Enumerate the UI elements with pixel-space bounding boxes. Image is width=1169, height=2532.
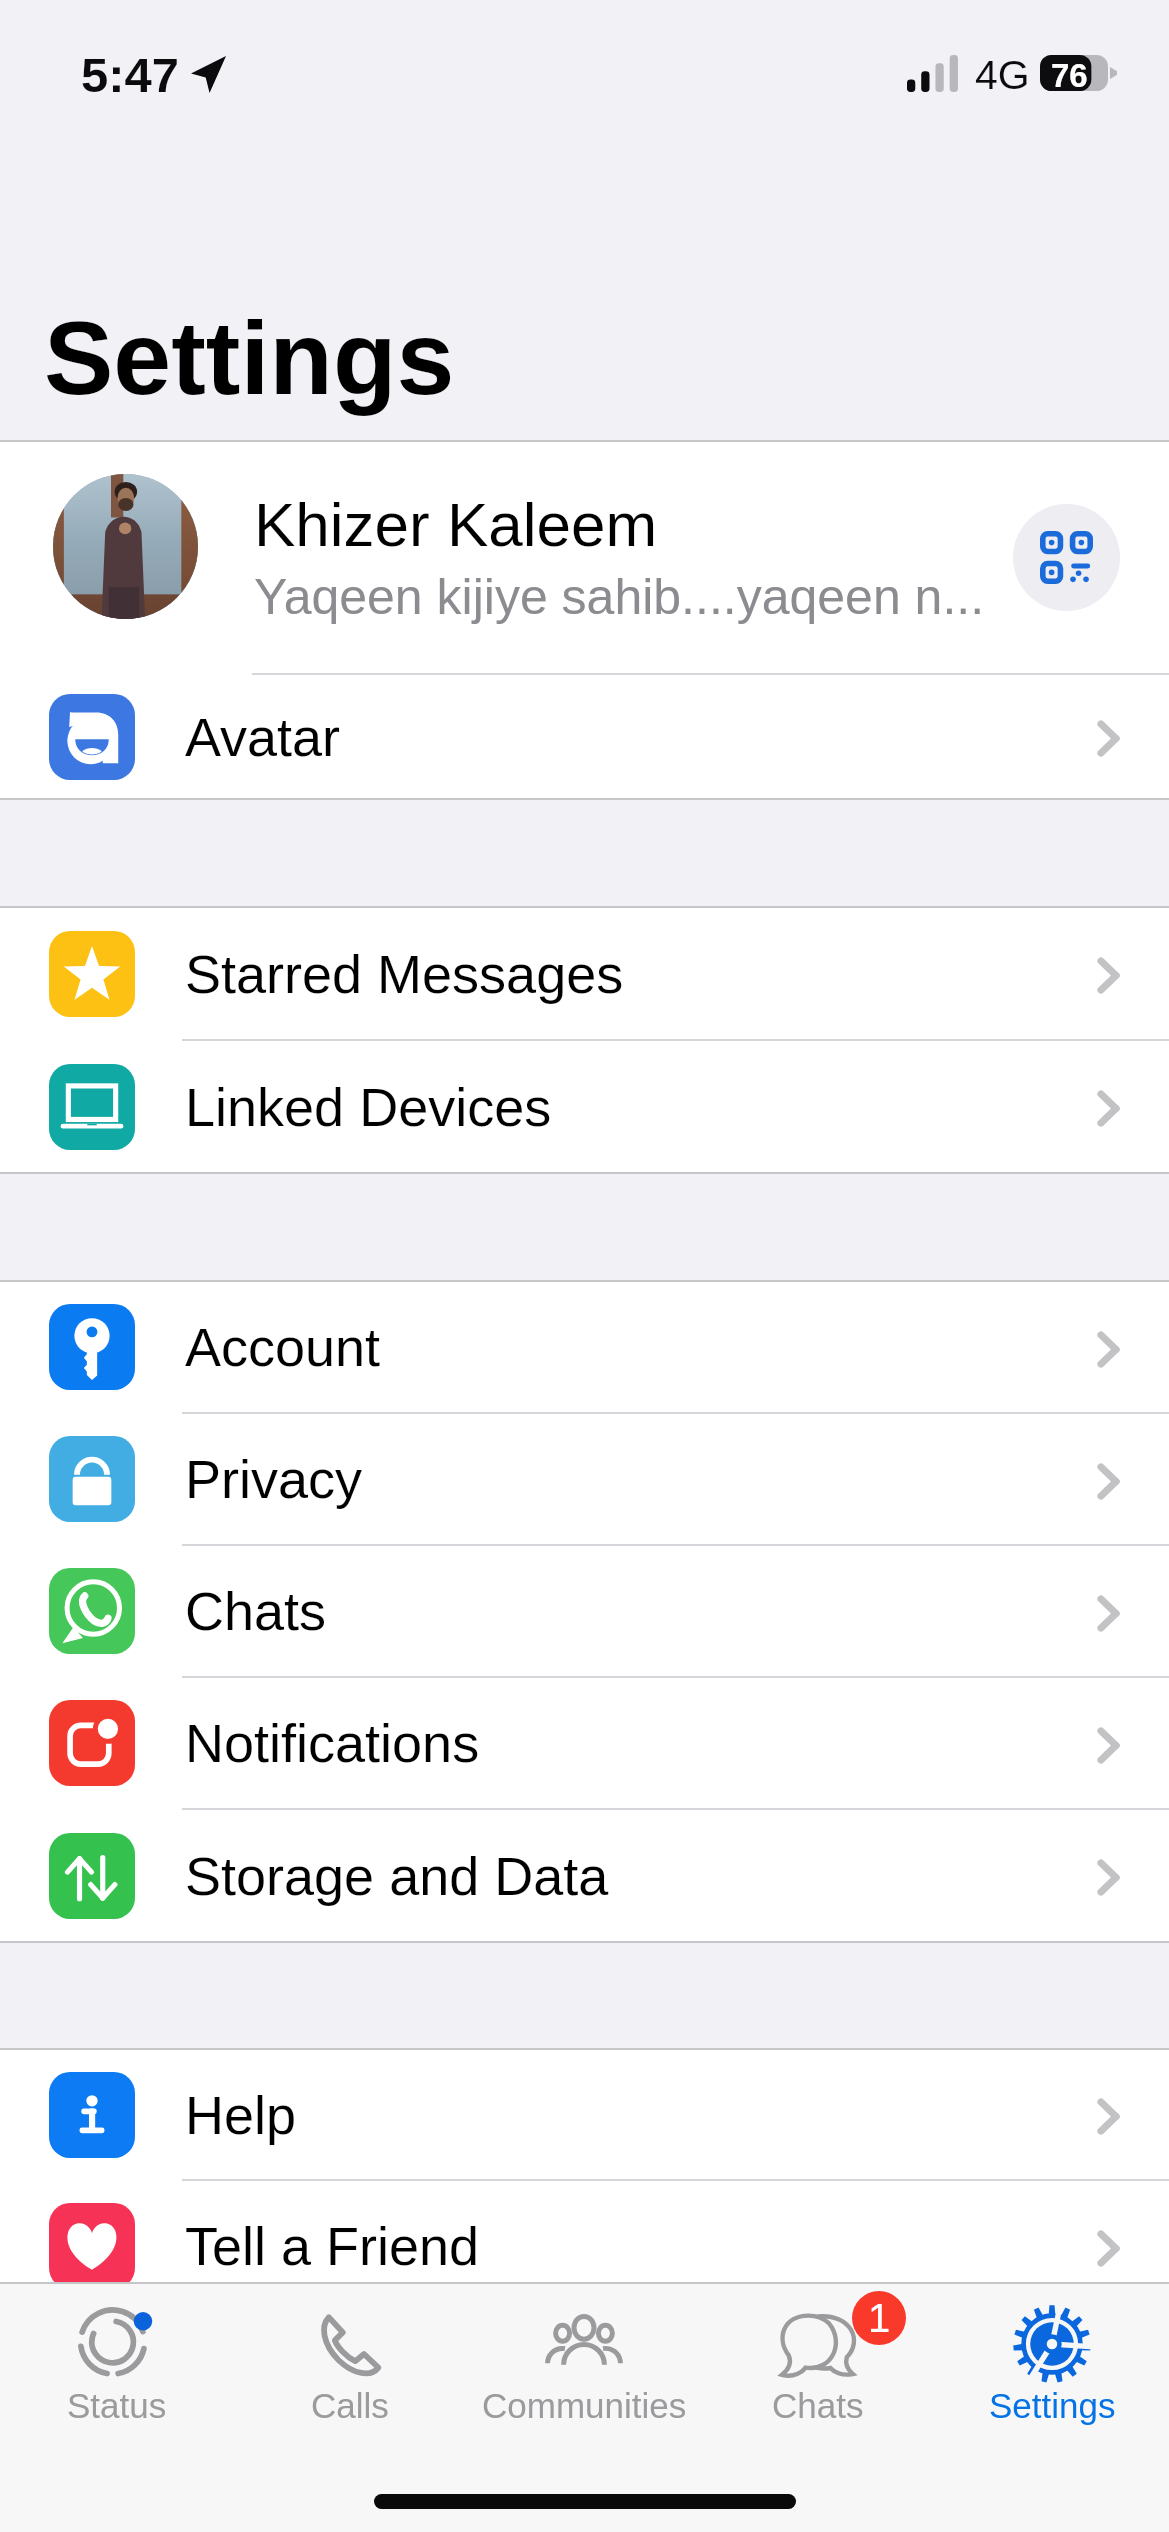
button[interactable]: Privacy: [0, 1414, 1169, 1544]
staticText: Account: [185, 1317, 1097, 1377]
button[interactable]: Linked Devices: [0, 1041, 1169, 1172]
button[interactable]: Storage and Data: [0, 1810, 1169, 1941]
button[interactable]: Settings: [935, 2284, 1169, 2425]
button[interactable]: Calls: [233, 2284, 467, 2425]
staticText: Status: [67, 2386, 167, 2425]
staticText: Tell a Friend: [185, 2216, 1097, 2276]
button[interactable]: Notifications: [0, 1678, 1169, 1808]
staticText: Communities: [482, 2386, 687, 2425]
staticText: 1: [868, 2296, 891, 2341]
staticText: Avatar: [185, 707, 1097, 767]
staticText: Settings: [989, 2386, 1116, 2425]
staticText: Linked Devices: [185, 1077, 1097, 1137]
staticText: Yaqeen kijiye sahib....yaqeen n...: [254, 569, 985, 625]
button[interactable]: Status: [0, 2284, 233, 2425]
staticText: 76: [1051, 57, 1088, 94]
button[interactable]: Starred Messages: [0, 908, 1169, 1039]
button[interactable]: Communities: [467, 2284, 701, 2425]
staticText: Storage and Data: [185, 1846, 1097, 1906]
button[interactable]: My QR code: [1013, 504, 1120, 611]
staticText: Settings: [44, 300, 455, 416]
staticText: Chats: [772, 2386, 864, 2425]
button[interactable]: Chats: [701, 2284, 935, 2425]
staticText: Help: [185, 2085, 1097, 2145]
staticText: Calls: [311, 2386, 389, 2425]
staticText: Privacy: [185, 1449, 1097, 1509]
staticText: Khizer Kaleem: [254, 490, 658, 559]
button[interactable]: Help: [0, 2050, 1169, 2179]
staticText: Chats: [185, 1581, 1097, 1641]
button[interactable]: Khizer Kaleem: [0, 442, 1169, 673]
staticText: 4G: [975, 52, 1030, 98]
staticText: Notifications: [185, 1713, 1097, 1773]
staticText: Starred Messages: [185, 944, 1097, 1004]
button[interactable]: Chats: [0, 1546, 1169, 1676]
staticText: 5:47: [81, 48, 180, 103]
button[interactable]: Tell a Friend: [0, 2181, 1169, 2311]
button[interactable]: Account: [0, 1282, 1169, 1412]
button[interactable]: Avatar: [0, 675, 1169, 798]
